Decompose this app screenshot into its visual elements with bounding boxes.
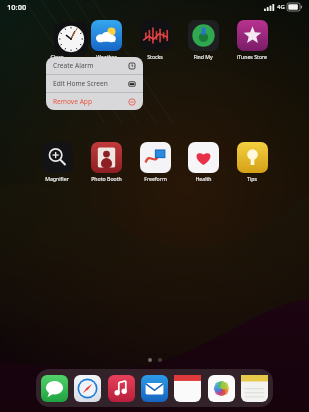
staticText: Weather xyxy=(96,53,117,60)
staticText: Photo Booth xyxy=(91,175,122,182)
button[interactable]: Safari xyxy=(74,375,101,402)
button[interactable]: Stocks xyxy=(134,20,176,60)
staticText: iTunes Store xyxy=(237,53,267,60)
button[interactable]: Clock xyxy=(36,20,78,60)
staticText: Health xyxy=(195,175,212,182)
staticText: Find My xyxy=(193,53,213,60)
button[interactable]: Tips xyxy=(231,142,273,182)
staticText: Edit Home Screen xyxy=(53,79,108,88)
button[interactable]: Weather xyxy=(85,20,127,60)
button[interactable]: Remove App xyxy=(46,93,143,110)
staticText: Freeform xyxy=(144,175,167,182)
staticText: Remove App xyxy=(53,97,92,106)
button[interactable]: Mail xyxy=(141,375,168,402)
button[interactable]: Photos xyxy=(208,375,235,402)
button[interactable]: Edit Home Screen xyxy=(46,75,143,92)
staticText: Magnifier xyxy=(45,175,69,182)
staticText: Tips xyxy=(247,175,257,182)
staticText: Clock xyxy=(50,53,64,60)
staticText: 10:00 xyxy=(7,2,27,12)
button[interactable]: Calendar xyxy=(174,375,201,402)
button[interactable]: Clock xyxy=(50,22,92,56)
button[interactable]: Create Alarm xyxy=(46,57,143,74)
button[interactable]: Freeform xyxy=(134,142,176,182)
staticText: Stocks xyxy=(147,53,163,60)
button[interactable]: Find My xyxy=(182,20,224,60)
button[interactable]: Notes xyxy=(241,375,268,402)
button[interactable]: Music xyxy=(108,375,135,402)
button[interactable]: iTunes Store xyxy=(231,20,273,60)
button[interactable]: Photo Booth xyxy=(85,142,127,182)
button[interactable]: Magnifier xyxy=(36,142,78,182)
button[interactable]: Health xyxy=(182,142,224,182)
staticText: Create Alarm xyxy=(53,61,94,70)
staticText: 4G xyxy=(277,3,285,11)
button[interactable]: Messages xyxy=(41,375,68,402)
